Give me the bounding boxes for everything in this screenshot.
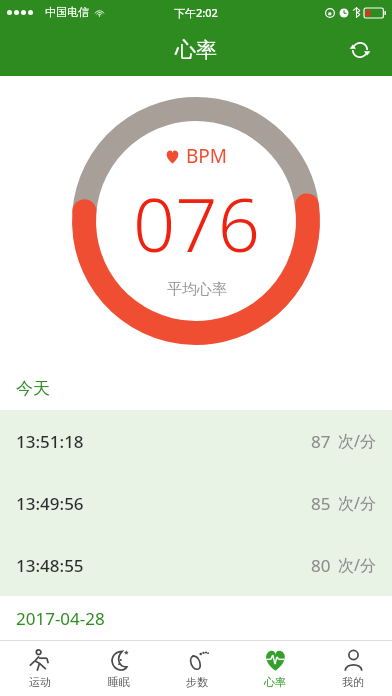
- button[interactable]: 13:51:18: [0, 410, 392, 472]
- button[interactable]: 13:49:56: [0, 472, 392, 534]
- staticText: 睡眠: [108, 675, 130, 689]
- staticText: BPM: [186, 143, 228, 169]
- staticText: 平均心率: [167, 280, 227, 299]
- staticText: 心率: [175, 37, 217, 63]
- staticText: 中国电信: [45, 5, 89, 19]
- staticText: 次/分: [338, 554, 376, 576]
- button[interactable]: 睡眠: [79, 641, 158, 696]
- button[interactable]: 13:48:55: [0, 534, 392, 596]
- staticText: 87: [311, 430, 331, 453]
- staticText: 13:48:55: [16, 554, 84, 577]
- staticText: 我的: [342, 675, 364, 689]
- staticText: 13:49:56: [16, 492, 84, 515]
- staticText: 次/分: [338, 430, 376, 452]
- staticText: 80: [311, 554, 331, 577]
- button[interactable]: 步数: [158, 641, 236, 696]
- staticText: 85: [311, 492, 331, 515]
- staticText: 下午2:02: [174, 5, 218, 20]
- staticText: 13:51:18: [16, 430, 84, 453]
- button[interactable]: 我的: [314, 641, 392, 696]
- staticText: 心率: [264, 675, 286, 689]
- staticText: 076: [133, 173, 260, 274]
- staticText: 今天: [16, 378, 50, 399]
- button[interactable]: 心率: [236, 641, 314, 696]
- button[interactable]: Refresh: [340, 30, 380, 70]
- button[interactable]: 运动: [0, 641, 79, 696]
- staticText: 步数: [186, 675, 208, 689]
- staticText: 次/分: [338, 492, 376, 514]
- staticText: 运动: [29, 675, 51, 689]
- staticText: 2017-04-28: [16, 607, 105, 630]
